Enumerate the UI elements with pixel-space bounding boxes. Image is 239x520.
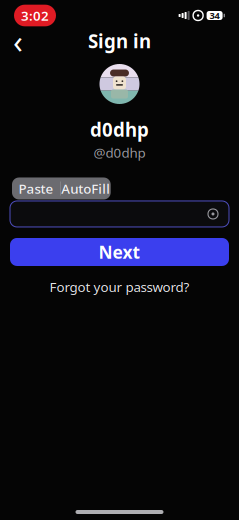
staticText: AutoFill <box>61 180 110 197</box>
staticText: ‹ <box>13 20 23 62</box>
button[interactable]: Next <box>10 238 229 266</box>
button[interactable]: Show password <box>203 204 223 224</box>
staticText: Forgot your password? <box>49 278 189 296</box>
staticText: 3:02 <box>21 7 49 24</box>
staticText: d0dhp <box>90 117 149 142</box>
button[interactable]: Back <box>4 27 32 55</box>
staticText: Sign in <box>88 29 151 53</box>
staticText: Paste <box>18 180 53 197</box>
staticText: Next <box>98 240 140 263</box>
button[interactable]: Forgot your password? <box>39 273 199 301</box>
button[interactable]: Paste <box>12 177 60 199</box>
staticText: Password <box>12 177 79 197</box>
button[interactable]: AutoFill <box>61 177 111 199</box>
staticText: 34 <box>210 9 220 22</box>
staticText: @d0dhp <box>93 144 145 161</box>
